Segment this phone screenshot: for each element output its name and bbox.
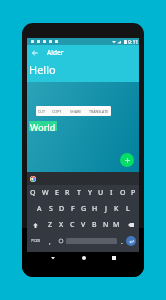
button[interactable]: R <box>62 185 73 201</box>
button[interactable]: SHARE <box>70 106 82 116</box>
staticText: Hello <box>29 62 56 77</box>
button[interactable]: Enter <box>126 236 136 246</box>
button[interactable]: G <box>78 201 89 217</box>
staticText: P <box>131 188 136 198</box>
button[interactable]: COPY <box>52 106 62 116</box>
staticText: TRANSLATE <box>89 109 109 114</box>
button[interactable]: E <box>51 185 62 201</box>
button[interactable]: L <box>122 201 133 217</box>
button[interactable]: CUT <box>38 106 45 116</box>
button[interactable]: Z <box>44 217 56 233</box>
staticText: T <box>77 188 81 198</box>
staticText: E <box>55 188 59 198</box>
button[interactable]: V <box>78 217 89 233</box>
button[interactable]: Home <box>78 252 89 263</box>
button[interactable]: . <box>117 233 126 249</box>
staticText: S <box>49 204 53 214</box>
button[interactable]: Q <box>27 185 39 201</box>
staticText: . <box>121 237 123 246</box>
staticText: X <box>59 220 64 230</box>
staticText: G <box>81 204 87 214</box>
button[interactable]: Shift <box>27 217 44 233</box>
button[interactable]: M <box>111 217 122 233</box>
button[interactable]: P <box>128 185 139 201</box>
staticText: U <box>98 188 104 198</box>
staticText: H <box>92 204 98 214</box>
button[interactable]: Emoji <box>55 233 66 249</box>
button[interactable]: C <box>67 217 78 233</box>
staticText: ?123 <box>31 238 41 244</box>
button[interactable]: T <box>73 185 84 201</box>
button[interactable]: Recent apps <box>108 252 119 263</box>
staticText: L <box>126 204 130 214</box>
staticText: V <box>81 220 86 230</box>
staticText: World <box>30 121 56 131</box>
staticText: R <box>65 188 70 198</box>
staticText: , <box>49 237 51 246</box>
button[interactable]: I <box>106 185 117 201</box>
staticText: D <box>59 204 65 214</box>
button[interactable]: K <box>111 201 122 217</box>
staticText: J <box>105 204 107 214</box>
button[interactable]: F <box>67 201 78 217</box>
staticText: M <box>113 220 120 230</box>
button[interactable]: S <box>45 201 56 217</box>
button[interactable]: O <box>117 185 128 201</box>
button[interactable]: Back <box>27 45 43 60</box>
button[interactable]: B <box>89 217 100 233</box>
button[interactable]: U <box>95 185 106 201</box>
staticText: N <box>103 220 109 230</box>
staticText: C <box>70 220 75 230</box>
staticText: K <box>114 204 119 214</box>
staticText: CUT <box>38 109 45 114</box>
button[interactable]: TRANSLATE <box>89 106 109 116</box>
button[interactable]: , <box>44 233 55 249</box>
button[interactable]: W <box>39 185 51 201</box>
button[interactable]: J <box>100 201 111 217</box>
button[interactable]: X <box>56 217 67 233</box>
button[interactable]: H <box>89 201 100 217</box>
button[interactable]: N <box>100 217 111 233</box>
staticText: Z <box>48 220 53 230</box>
staticText: W <box>42 188 49 198</box>
button[interactable]: A <box>33 201 45 217</box>
staticText: Y <box>88 188 92 198</box>
button[interactable]: Backspace <box>122 217 139 233</box>
staticText: Alder <box>47 48 64 57</box>
button[interactable]: ?123 <box>27 233 44 249</box>
button[interactable]: Y <box>84 185 95 201</box>
staticText: B <box>92 220 97 230</box>
staticText: I <box>110 188 113 198</box>
staticText: SHARE <box>70 109 82 114</box>
staticText: COPY <box>52 109 62 114</box>
button[interactable]: Edit <box>120 153 134 167</box>
staticText: O <box>120 188 126 198</box>
staticText: Q <box>30 188 36 198</box>
staticText: A <box>37 204 42 214</box>
staticText: 9:11 <box>128 38 139 45</box>
button[interactable]: Back <box>47 252 58 263</box>
staticText: F <box>71 204 75 214</box>
button[interactable]: D <box>56 201 67 217</box>
button[interactable]: Google Assistant <box>30 176 36 182</box>
